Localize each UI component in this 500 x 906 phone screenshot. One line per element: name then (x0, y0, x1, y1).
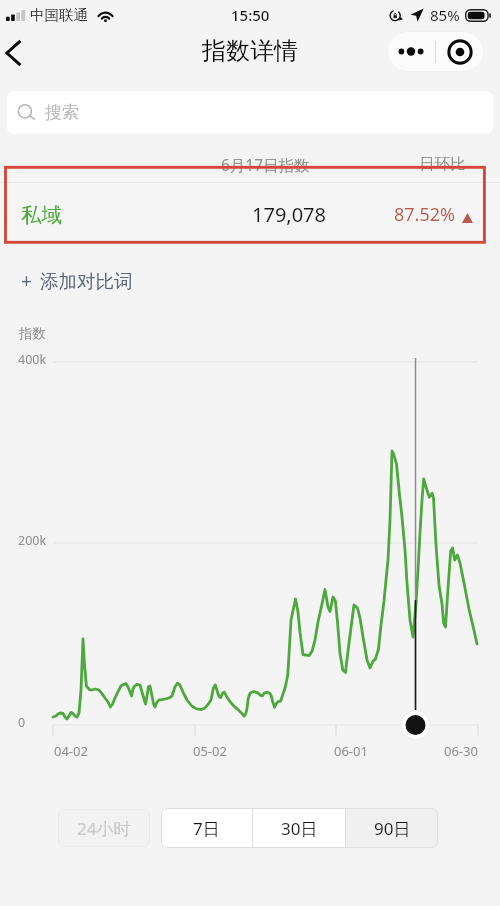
staticText: + (21, 268, 32, 294)
staticText: 24小时 (77, 817, 131, 840)
staticText: 85% (430, 5, 460, 25)
staticText: 15:50 (231, 5, 270, 25)
staticText: 私域 (21, 202, 62, 228)
staticText: 指数 (19, 325, 46, 342)
button[interactable]: 私域 (0, 183, 500, 242)
staticText: 179,078 (252, 201, 326, 228)
button[interactable]: Close mini program (436, 31, 484, 72)
staticText: 90日 (374, 817, 411, 840)
button[interactable]: 90日 (346, 808, 438, 848)
staticText: 日环比 (419, 154, 466, 174)
staticText: 添加对比词 (40, 270, 133, 293)
staticText: 06-30 (444, 742, 478, 760)
staticText: 06-01 (334, 742, 368, 760)
button[interactable]: 30日 (253, 808, 345, 848)
staticText: 0 (18, 714, 26, 731)
staticText: 05-02 (193, 742, 227, 760)
staticText: 200k (18, 532, 47, 549)
button[interactable]: Back (0, 30, 40, 76)
staticText: 04-02 (54, 742, 88, 760)
button[interactable]: More (387, 31, 435, 72)
staticText: 6月17日指数 (221, 154, 310, 175)
staticText: 指数详情 (202, 36, 298, 66)
button[interactable]: + (14, 265, 140, 297)
button[interactable]: 7日 (161, 808, 252, 848)
staticText: 87.52% (394, 202, 455, 227)
staticText: 30日 (281, 817, 318, 840)
staticText: 搜索 (45, 102, 79, 123)
staticText: 中国联通 (30, 6, 88, 24)
staticText: 400k (18, 351, 47, 368)
staticText: 7日 (193, 817, 220, 840)
button[interactable]: 24小时 (58, 809, 150, 847)
button[interactable]: 搜索 (7, 91, 493, 134)
